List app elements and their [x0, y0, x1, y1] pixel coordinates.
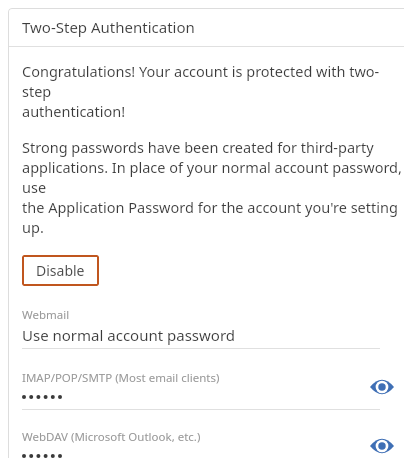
staticText: Disable	[36, 261, 85, 280]
button[interactable]: IMAP/POP/SMTP (Most email clients)	[8, 365, 404, 409]
staticText: WebDAV (Microsoft Outlook, etc.)	[22, 429, 201, 445]
staticText: Two-Step Authentication	[22, 17, 195, 37]
button[interactable]: Webmail	[8, 304, 404, 348]
staticText: Use normal account password	[22, 325, 236, 345]
staticText: Webmail	[22, 307, 70, 323]
button[interactable]: Show password	[366, 430, 398, 458]
staticText: Congratulations! Your account is protect…	[22, 61, 398, 121]
button[interactable]: Show password	[366, 371, 398, 403]
staticText: Strong passwords have been created for t…	[22, 137, 402, 237]
button[interactable]: WebDAV (Microsoft Outlook, etc.)	[8, 426, 404, 458]
staticText: IMAP/POP/SMTP (Most email clients)	[22, 370, 220, 386]
button[interactable]: Disable	[22, 255, 99, 286]
